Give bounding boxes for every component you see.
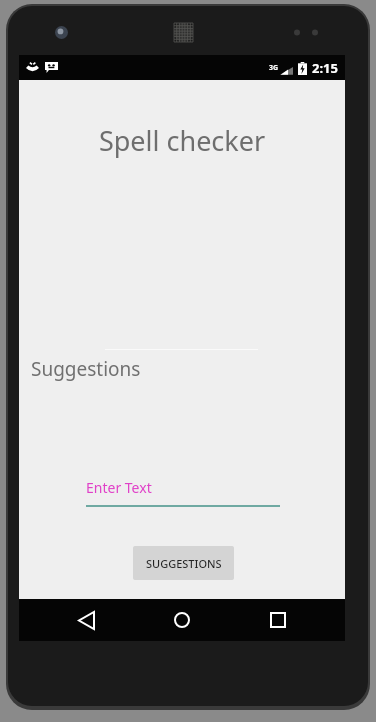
button[interactable]: Home bbox=[153, 599, 211, 641]
button[interactable]: Enter Text bbox=[86, 478, 280, 507]
staticText: SUGGESTIONS bbox=[146, 556, 222, 571]
button[interactable]: Back bbox=[57, 599, 115, 641]
button[interactable]: Recent apps bbox=[249, 599, 307, 641]
staticText: Spell checker bbox=[19, 122, 345, 159]
staticText: 2:15 bbox=[312, 59, 338, 77]
button[interactable]: SUGGESTIONS bbox=[133, 546, 234, 580]
staticText: Enter Text bbox=[86, 478, 152, 497]
staticText: 3G bbox=[269, 63, 279, 73]
staticText: Suggestions bbox=[31, 356, 141, 382]
